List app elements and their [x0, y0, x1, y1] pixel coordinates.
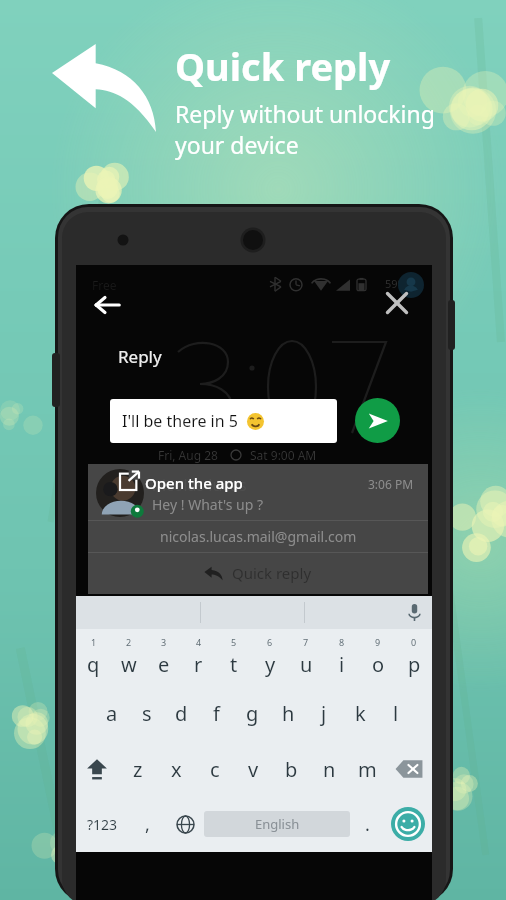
staticText: Fri, Aug 28	[158, 447, 218, 463]
staticText: ?123	[87, 815, 118, 834]
staticText: v	[248, 756, 259, 783]
button[interactable]: c	[196, 743, 234, 795]
staticText: 5	[231, 636, 237, 648]
staticText: h	[282, 700, 295, 727]
staticText: 4	[196, 636, 202, 648]
staticText: q	[87, 651, 100, 678]
button[interactable]: a	[94, 687, 129, 739]
other: Reply	[52, 44, 156, 132]
staticText: nicolas lucas	[152, 474, 247, 496]
staticText: z	[133, 756, 143, 783]
staticText: l	[393, 700, 399, 727]
staticText: Sat 9:00 AM	[250, 447, 317, 463]
button[interactable]: ?123	[76, 799, 128, 849]
button[interactable]: s	[129, 687, 164, 739]
button[interactable]: z	[118, 743, 157, 795]
button[interactable]: Shift	[76, 743, 118, 795]
button[interactable]: nicolas.lucas.mail@gmail.com	[88, 521, 428, 552]
button[interactable]: g	[234, 687, 270, 739]
staticText: 2	[126, 636, 132, 648]
staticText: s	[142, 700, 152, 727]
staticText: o	[372, 651, 385, 678]
staticText: k	[355, 700, 366, 727]
button[interactable]: 3	[146, 633, 181, 685]
staticText: j	[321, 700, 327, 727]
button[interactable]: 6	[252, 633, 288, 685]
button[interactable]: 8	[324, 633, 360, 685]
button[interactable]: I'll be there in 5	[110, 399, 337, 443]
staticText: c	[210, 756, 220, 783]
button[interactable]: v	[234, 743, 272, 795]
staticText: 0	[411, 636, 417, 648]
button[interactable]: Send	[355, 398, 400, 443]
staticText: .	[365, 812, 370, 837]
staticText: x	[171, 756, 182, 783]
button[interactable]: 9	[360, 633, 396, 685]
button[interactable]: 7	[288, 633, 324, 685]
button[interactable]: ,	[128, 799, 166, 849]
staticText: English	[255, 815, 300, 833]
staticText: nicolas.lucas.mail@gmail.com	[160, 527, 357, 546]
button[interactable]: Backspace	[386, 743, 432, 795]
staticText: m	[358, 756, 377, 783]
button[interactable]: n	[310, 743, 348, 795]
button[interactable]: f	[199, 687, 234, 739]
button[interactable]: Emoji	[384, 799, 432, 849]
staticText: u	[300, 651, 313, 678]
staticText: Quick reply	[232, 563, 312, 583]
staticText: r	[194, 651, 203, 678]
button[interactable]: Change language	[166, 799, 204, 849]
staticText: b	[285, 756, 298, 783]
staticText: n	[323, 756, 336, 783]
button[interactable]: 2	[111, 633, 146, 685]
staticText: Open the app	[145, 473, 243, 493]
button[interactable]: l	[378, 687, 414, 739]
staticText: y	[265, 651, 276, 678]
staticText: g	[246, 700, 259, 727]
button[interactable]: Voice input	[76, 596, 432, 629]
button[interactable]: Back	[90, 288, 124, 322]
button[interactable]: d	[164, 687, 199, 739]
button[interactable]: .	[350, 799, 384, 849]
button[interactable]: x	[157, 743, 196, 795]
staticText: Hey ! What's up ?	[152, 495, 264, 514]
button[interactable]: j	[306, 687, 342, 739]
staticText: e	[158, 651, 170, 678]
button[interactable]: 5	[216, 633, 252, 685]
staticText: 8	[339, 636, 345, 648]
staticText: t	[230, 651, 238, 678]
button[interactable]: 1	[76, 633, 111, 685]
staticText: a	[106, 700, 118, 727]
staticText: 3:06 PM	[368, 476, 414, 492]
staticText: 59%	[385, 276, 407, 291]
other: Voice input	[406, 604, 423, 621]
staticText: w	[121, 651, 137, 678]
staticText: Quick reply	[175, 40, 391, 92]
staticText: p	[408, 651, 421, 678]
button[interactable]: Close	[380, 286, 414, 320]
button[interactable]: b	[272, 743, 310, 795]
button[interactable]: 4	[181, 633, 216, 685]
staticText: Free	[92, 277, 117, 293]
staticText: 9	[375, 636, 381, 648]
staticText: d	[175, 700, 188, 727]
staticText: your device	[175, 129, 299, 160]
staticText: 7	[303, 636, 309, 648]
button[interactable]: k	[342, 687, 378, 739]
staticText: f	[213, 700, 220, 727]
button[interactable]: h	[270, 687, 306, 739]
staticText: i	[339, 651, 345, 678]
staticText: 3	[161, 636, 167, 648]
button[interactable]: nicolas lucas	[88, 464, 428, 594]
staticText: I'll be there in 5	[122, 410, 238, 432]
button[interactable]: English	[204, 811, 350, 837]
staticText: 6	[267, 636, 273, 648]
button[interactable]: m	[348, 743, 386, 795]
staticText: 1	[91, 636, 97, 648]
button[interactable]: Quick reply	[88, 553, 428, 593]
staticText: ,	[145, 812, 150, 837]
staticText: Reply	[118, 345, 162, 368]
button[interactable]: 0	[396, 633, 432, 685]
staticText: Reply without unlocking	[175, 98, 435, 129]
